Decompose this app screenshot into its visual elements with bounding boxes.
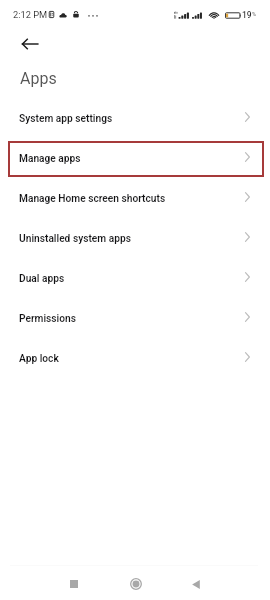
staticText: 19	[242, 10, 252, 20]
button[interactable]: System app settings	[0, 99, 270, 139]
button[interactable]: Home	[124, 572, 148, 596]
button[interactable]: Recent apps	[62, 572, 86, 596]
staticText: Manage apps	[19, 153, 81, 165]
staticText: 2:12 PM	[13, 9, 48, 20]
staticText: Dual apps	[19, 273, 65, 285]
button[interactable]: App lock	[0, 339, 270, 379]
staticText: App lock	[19, 353, 59, 365]
button[interactable]: Manage Home screen shortcuts	[0, 179, 270, 219]
staticText: Apps	[20, 69, 57, 88]
button[interactable]: Back	[184, 572, 208, 596]
staticText: Uninstalled system apps	[19, 233, 131, 245]
button[interactable]: Back	[14, 28, 46, 60]
button[interactable]: Dual apps	[0, 259, 270, 299]
staticText: Permissions	[19, 313, 76, 325]
button[interactable]: Uninstalled system apps	[0, 219, 270, 259]
button[interactable]: Permissions	[0, 299, 270, 339]
staticText: Manage Home screen shortcuts	[19, 193, 166, 205]
staticText: %	[252, 11, 257, 17]
button[interactable]: Manage apps	[0, 139, 270, 179]
staticText: System app settings	[19, 113, 113, 125]
